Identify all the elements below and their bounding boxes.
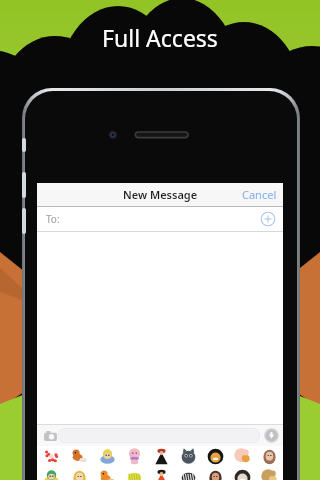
staticText: New Message: [123, 187, 198, 202]
button[interactable]: Sticker: [175, 467, 202, 480]
button[interactable]: Send: [264, 428, 279, 443]
button[interactable]: Sticker: [37, 467, 65, 480]
button[interactable]: Sticker: [121, 467, 148, 480]
button[interactable]: Add contact: [260, 211, 276, 227]
button[interactable]: Sticker: [202, 467, 229, 480]
button[interactable]: Sticker: [148, 446, 175, 467]
button[interactable]: Sticker: [93, 467, 121, 480]
button[interactable]: Sticker: [37, 446, 65, 467]
staticText: To:: [46, 212, 60, 226]
button[interactable]: Sticker: [65, 467, 93, 480]
button[interactable]: Sticker: [175, 446, 202, 467]
button[interactable]: Sticker: [148, 467, 175, 480]
button[interactable]: Sticker: [202, 446, 229, 467]
button[interactable]: Sticker: [65, 446, 93, 467]
button[interactable]: Sticker: [93, 446, 121, 467]
button[interactable]: Cancel: [236, 183, 283, 206]
staticText: Full Access: [102, 22, 218, 53]
button[interactable]: Sticker: [121, 446, 148, 467]
button[interactable]: Sticker: [229, 446, 256, 467]
staticText: Cancel: [242, 187, 277, 202]
button[interactable]: Sticker: [256, 467, 283, 480]
button[interactable]: Sticker: [256, 446, 283, 467]
button[interactable]: Sticker: [229, 467, 256, 480]
button[interactable]: Camera: [42, 428, 58, 444]
button[interactable]: To:: [37, 207, 283, 231]
